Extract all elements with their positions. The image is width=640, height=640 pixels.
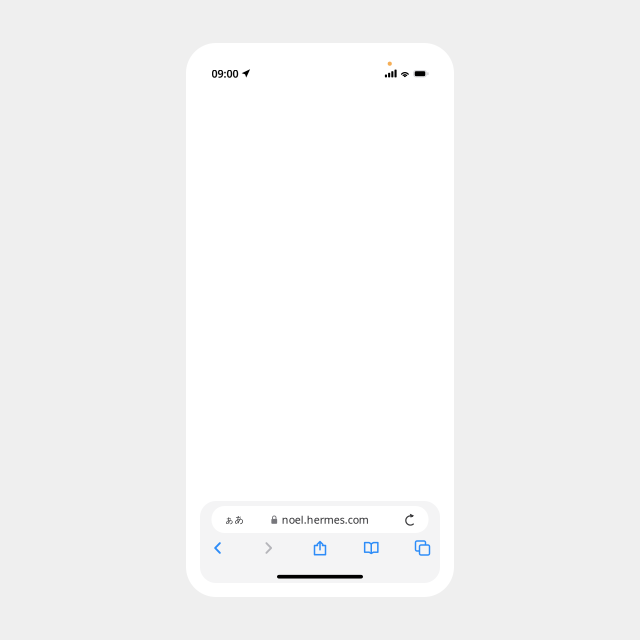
staticText: noel.hermes.com (282, 512, 369, 527)
button[interactable]: Tabs (403, 535, 441, 561)
staticText: ぁあ (224, 514, 244, 525)
button[interactable]: Back (198, 535, 236, 561)
button[interactable]: Share (301, 535, 339, 561)
staticText: 09:00 (211, 66, 238, 81)
button[interactable]: Bookmarks (352, 535, 390, 561)
button[interactable]: Forward (250, 535, 288, 561)
button[interactable]: noel.hermes.com (211, 506, 428, 533)
